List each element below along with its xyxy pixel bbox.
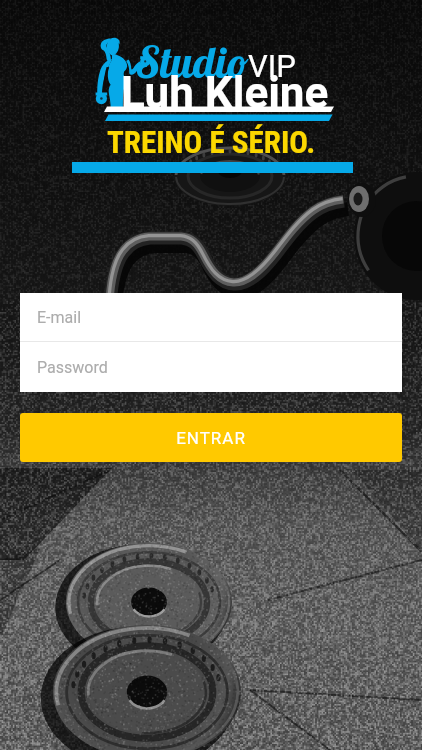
staticText: Studio — [137, 35, 248, 89]
staticText: Luh Kleine — [121, 67, 329, 119]
button[interactable]: Password — [20, 342, 402, 392]
staticText: ENTRAR — [176, 428, 246, 448]
staticText: VIP — [248, 48, 296, 84]
button[interactable]: ENTRAR — [20, 413, 402, 462]
staticText: Password — [37, 358, 108, 377]
button[interactable]: E-mail — [20, 293, 402, 341]
staticText: E-mail — [37, 308, 82, 327]
staticText: TREINO É SÉRIO. — [107, 124, 316, 160]
